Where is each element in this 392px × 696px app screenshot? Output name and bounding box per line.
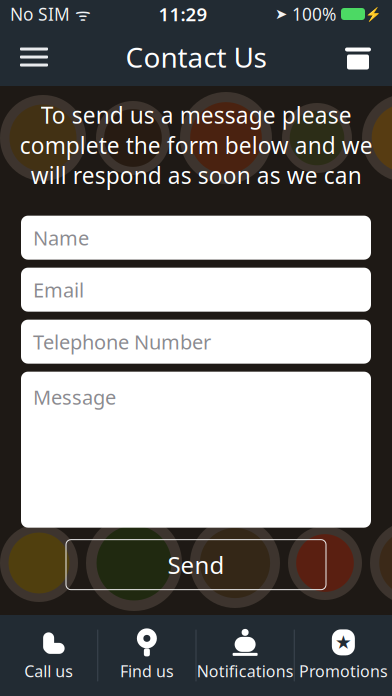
staticText: ➤ [275, 6, 287, 22]
staticText: No SIM [10, 2, 70, 25]
staticText: To send us a message please complete the… [19, 100, 372, 190]
staticText: Telephone Number [33, 328, 211, 355]
staticText: Notifications [197, 660, 294, 682]
staticText: Message [33, 384, 116, 410]
staticText: 100% [287, 2, 336, 25]
staticText: ★ [335, 632, 352, 653]
button[interactable]: Call us [0, 615, 97, 696]
staticText: Call us [24, 660, 73, 682]
button[interactable]: Name [21, 216, 371, 260]
button[interactable]: Notifications [196, 615, 294, 696]
staticText: Contact Us [125, 38, 266, 76]
staticText: Name [33, 224, 89, 251]
staticText: Send [167, 549, 224, 581]
button[interactable]: ★ [295, 615, 392, 696]
staticText: ⚡ [365, 6, 382, 22]
button[interactable]: Find us [98, 615, 195, 696]
button[interactable]: Message [21, 372, 371, 528]
staticText: 11:29 [158, 2, 207, 26]
staticText: Promotions [299, 660, 388, 682]
button[interactable]: Telephone Number [21, 320, 371, 364]
staticText: ᯤ [70, 2, 91, 25]
button[interactable]: Home [332, 28, 384, 86]
button[interactable]: Menu [8, 28, 60, 86]
button[interactable]: Email [21, 268, 371, 312]
staticText: Find us [120, 660, 174, 682]
button[interactable]: Send [66, 540, 326, 590]
staticText: Email [33, 276, 84, 303]
